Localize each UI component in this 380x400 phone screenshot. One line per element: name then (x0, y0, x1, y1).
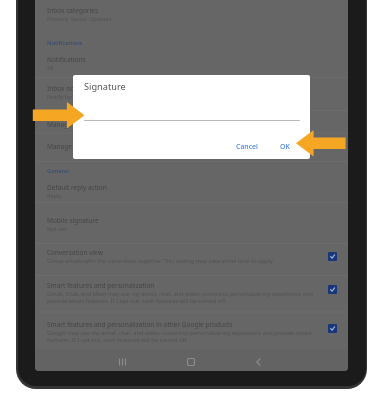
button[interactable]: Recent apps (115, 355, 129, 369)
staticText: Primary, Social, Updates (47, 15, 112, 23)
staticText: Google may use my email, chat, and video… (47, 329, 322, 344)
button[interactable]: Conversation view (35, 248, 348, 265)
button[interactable]: Default reply action (35, 183, 348, 200)
staticText: Gmail, Chat, and Meet may use my email, … (47, 290, 322, 305)
button[interactable]: OK (276, 139, 294, 154)
staticText: Mobile signature (47, 216, 99, 225)
button[interactable]: Back (252, 355, 266, 369)
staticText: Smart features and personalization (47, 281, 155, 290)
staticText: Signature (84, 80, 126, 93)
staticText: Manage notifications (47, 142, 112, 151)
button[interactable]: Inbox categories (35, 6, 348, 23)
staticText: Reply (47, 192, 62, 200)
button[interactable]: Cancel (232, 139, 262, 154)
staticText: OK (280, 142, 290, 151)
button[interactable]: Smart features and personalization (35, 281, 348, 305)
staticText: Inbox notifications (47, 84, 104, 93)
staticText: Default reply action (47, 183, 107, 192)
staticText: Notifications (47, 39, 83, 47)
staticText: General (47, 167, 69, 175)
staticText: Notifications (47, 55, 86, 64)
staticText: Not set (47, 225, 67, 233)
staticText: Manage labels (47, 120, 92, 129)
staticText: Group emails with the same topic togethe… (47, 257, 273, 265)
button[interactable]: Smart features and personalization in ot… (35, 320, 348, 344)
staticText: Conversation view (47, 248, 103, 257)
staticText: All (47, 64, 54, 72)
button[interactable]: Inbox notifications (35, 84, 348, 101)
button[interactable]: Manage notifications (35, 142, 348, 151)
button[interactable]: Home (184, 355, 198, 369)
staticText: Inbox categories (47, 6, 98, 15)
staticText: Cancel (236, 142, 258, 151)
staticText: Smart features and personalization in ot… (47, 320, 233, 329)
button[interactable]: Manage labels (35, 120, 348, 129)
staticText: Notify for every message (47, 93, 114, 101)
